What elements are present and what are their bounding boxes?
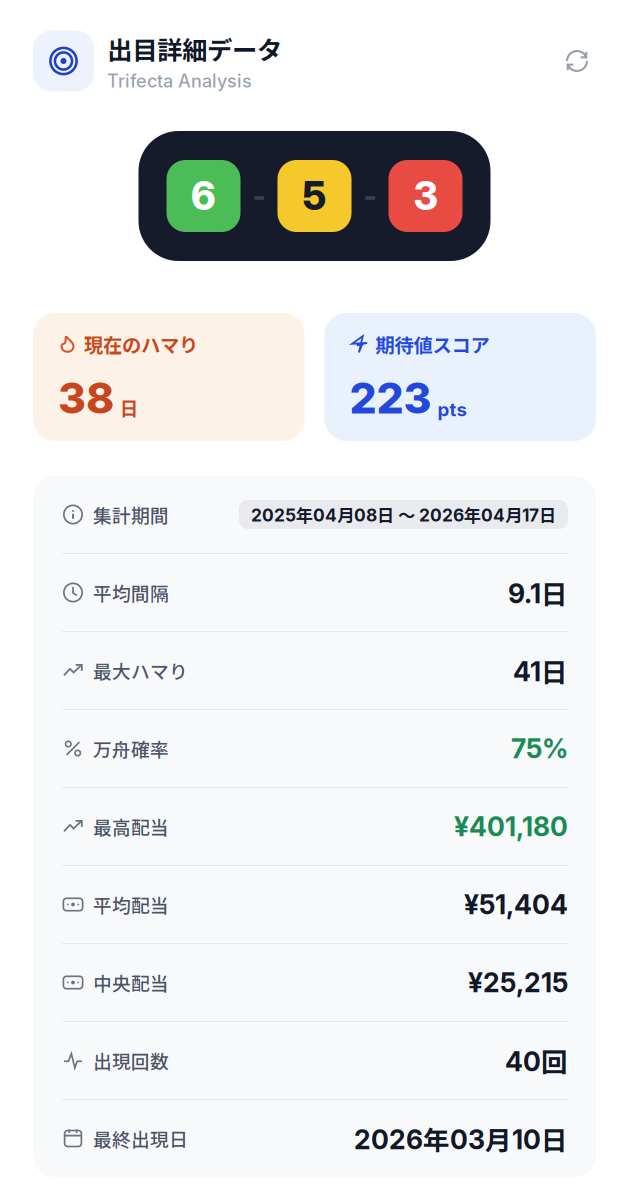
staticText: 集計期間 [93,501,169,528]
staticText: - [252,178,265,214]
staticText: 中央配当 [93,969,169,996]
staticText: 出現回数 [93,1047,169,1074]
staticText: 現在のハマり [84,330,198,358]
staticText: 平均配当 [93,891,169,918]
staticText: ¥51,404 [464,888,568,921]
staticText: 2025年04月08日 〜 2026年04月17日 [251,502,556,527]
staticText: 最高配当 [93,813,169,840]
staticText: 9.1日 [508,573,568,612]
staticText: 最大ハマり [93,657,188,684]
staticText: 5 [302,173,326,219]
staticText: 38 [58,372,114,424]
staticText: 平均間隔 [93,579,169,606]
staticText: - [363,178,376,214]
staticText: 日 [120,394,139,421]
button[interactable]: Refresh [555,39,599,83]
staticText: 223 [349,372,431,424]
staticText: 3 [413,173,437,219]
staticText: 6 [191,173,216,219]
staticText: 期待値スコア [375,330,489,358]
staticText: 最終出現日 [93,1125,188,1152]
staticText: 40回 [505,1041,568,1080]
staticText: pts [437,398,466,421]
staticText: 2026年03月10日 [354,1119,568,1158]
staticText: 41日 [513,651,568,690]
staticText: ¥25,215 [468,966,568,999]
staticText: 出目詳細データ [107,30,282,67]
staticText: 万舟確率 [93,735,169,762]
staticText: Trifecta Analysis [107,70,252,92]
staticText: ¥401,180 [454,810,568,843]
staticText: 75% [511,732,568,765]
